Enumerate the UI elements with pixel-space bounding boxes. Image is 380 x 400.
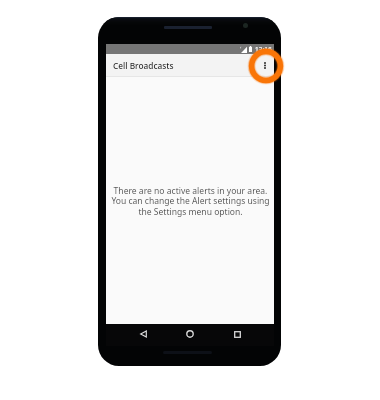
- button[interactable]: Home: [174, 325, 206, 343]
- staticText: There are no active alerts in your area.…: [111, 185, 270, 218]
- button[interactable]: Back: [127, 325, 159, 343]
- button[interactable]: Recent apps: [221, 325, 253, 343]
- button[interactable]: More options: [256, 57, 273, 74]
- staticText: Cell Broadcasts: [113, 60, 174, 71]
- staticText: 13:16: [255, 45, 272, 54]
